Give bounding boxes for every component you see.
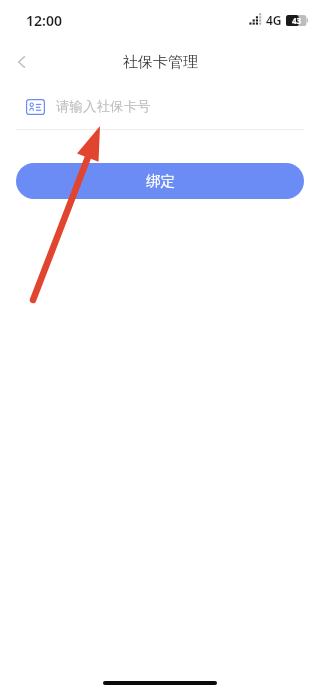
staticText: 43 [292, 15, 302, 26]
staticText: 社保卡管理 [123, 53, 198, 72]
staticText: 绑定 [146, 172, 175, 190]
button[interactable]: 请输入社保卡号 [0, 84, 320, 129]
button[interactable]: Back [0, 40, 44, 84]
staticText: 4G [266, 12, 282, 28]
staticText: 12:00 [26, 11, 62, 30]
staticText: 请输入社保卡号 [56, 98, 151, 115]
button[interactable]: 绑定 [16, 163, 304, 199]
